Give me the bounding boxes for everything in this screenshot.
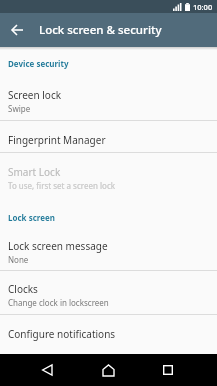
button[interactable]: Clocks [0, 271, 217, 314]
staticText: Change clock in lockscreen [8, 297, 109, 308]
staticText: Screen lock [8, 88, 62, 102]
staticText: Clocks [8, 282, 38, 296]
button[interactable]: Smart Lock [0, 153, 217, 191]
staticText: To use, first set a screen lock [8, 180, 115, 191]
staticText: Lock screen & security [39, 22, 162, 38]
button[interactable]: Configure notifications [0, 315, 217, 354]
button[interactable]: Screen lock [0, 70, 217, 120]
button[interactable] [31, 354, 63, 386]
staticText: Lock screen [8, 212, 55, 223]
button[interactable]: Lock screen message [0, 224, 217, 270]
staticText: None [8, 254, 29, 265]
staticText: Configure notifications [8, 327, 116, 341]
staticText: Device security [8, 58, 69, 69]
button[interactable] [0, 13, 34, 47]
staticText: Lock screen message [8, 239, 108, 253]
staticText: Fingerprint Manager [8, 133, 106, 147]
staticText: 10:00 [193, 2, 213, 12]
staticText: Swipe [8, 103, 31, 114]
button[interactable]: Fingerprint Manager [0, 121, 217, 152]
button[interactable] [152, 354, 184, 386]
button[interactable] [92, 354, 124, 386]
staticText: Smart Lock [8, 165, 61, 179]
